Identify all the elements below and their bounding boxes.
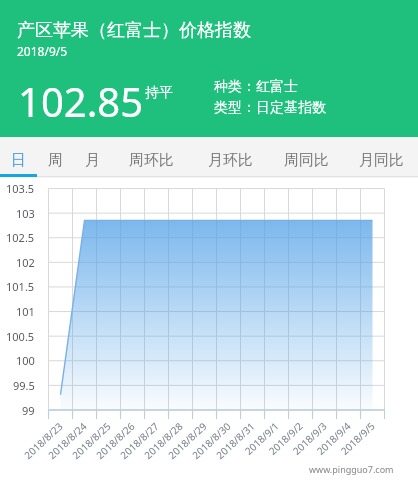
staticText: 持平	[145, 84, 173, 102]
staticText: 日	[11, 151, 26, 170]
staticText: 月	[85, 151, 100, 170]
staticText: 周环比	[129, 151, 174, 170]
staticText: 2018/9/5	[17, 43, 68, 59]
button[interactable]: 月同比	[344, 137, 418, 175]
button[interactable]: 周同比	[268, 137, 344, 175]
button[interactable]: 月	[74, 137, 111, 175]
staticText: 类型：日定基指数	[214, 99, 326, 117]
staticText: 周同比	[284, 151, 329, 170]
button[interactable]: 周环比	[111, 137, 192, 175]
staticText: 102.85	[18, 74, 144, 128]
button[interactable]: 周	[37, 137, 74, 175]
staticText: 种类：红富士	[214, 78, 298, 96]
staticText: 月同比	[359, 151, 404, 170]
button[interactable]: 月环比	[192, 137, 268, 175]
staticText: 周	[48, 151, 63, 170]
button[interactable]: 日	[0, 137, 37, 175]
staticText: 月环比	[208, 151, 253, 170]
staticText: 产区苹果（红富士）价格指数	[17, 19, 251, 42]
